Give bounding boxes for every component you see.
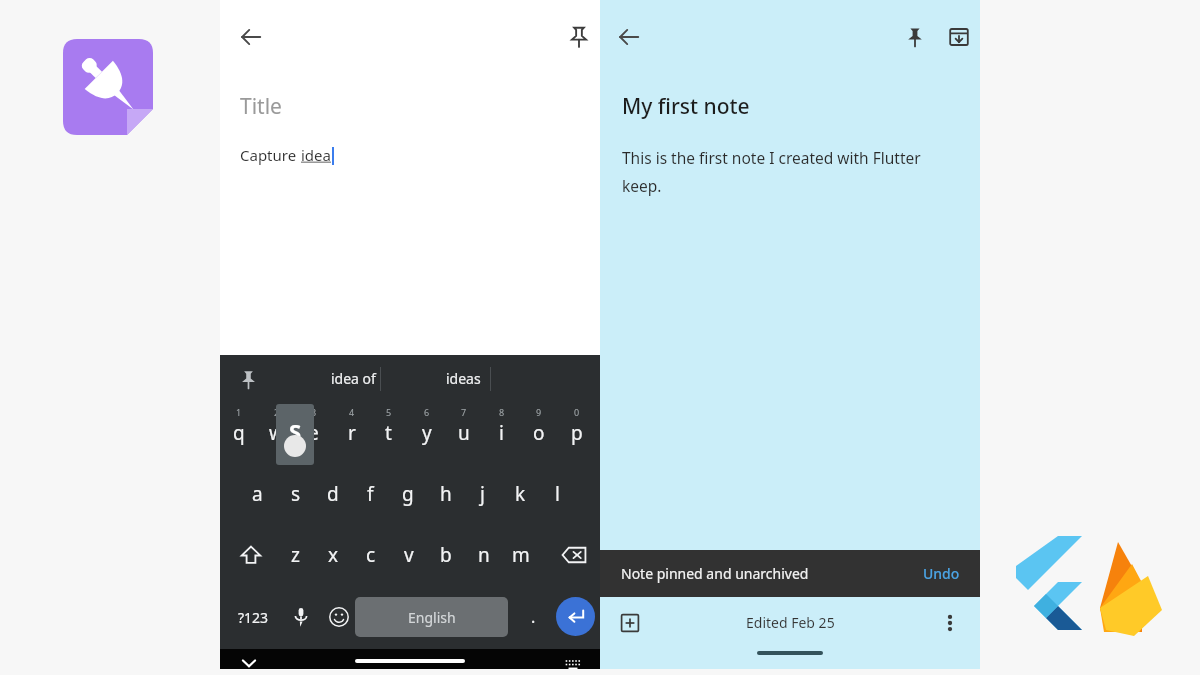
button[interactable]: d [314,463,351,524]
staticText: w [269,420,284,446]
staticText: q [233,420,245,446]
button[interactable]: 3 [295,402,332,463]
button[interactable]: x [315,524,352,585]
staticText: 9 [536,406,542,418]
staticText: ?123 [238,608,269,627]
staticText: . [531,606,536,628]
staticText: 7 [461,406,467,418]
staticText: x [328,542,339,568]
button[interactable]: Undo [923,564,960,583]
staticText: m [512,542,530,568]
staticText: Edited Feb 25 [746,613,835,632]
staticText: English [408,608,456,627]
staticText: 6 [424,406,430,418]
button[interactable]: Unpin note [896,18,934,56]
staticText: h [440,481,452,507]
staticText: i [499,420,504,446]
staticText: s [291,481,301,507]
button[interactable]: Voice input [282,585,320,649]
staticText: c [366,542,376,568]
button[interactable]: n [465,524,502,585]
staticText: 5 [386,406,392,418]
staticText: o [533,420,545,446]
button[interactable]: Pin note [560,18,598,56]
staticText: 1 [236,406,242,418]
button[interactable]: l [539,463,576,524]
button[interactable]: v [390,524,427,585]
button[interactable]: g [389,463,426,524]
staticText: My first note [622,92,750,121]
staticText: g [402,481,414,507]
button[interactable]: 8 [483,402,520,463]
button[interactable]: m [502,524,539,585]
staticText: 3 [311,406,317,418]
button[interactable]: Back [610,18,648,56]
button[interactable]: Enter [556,597,595,636]
button[interactable]: z [277,524,314,585]
button[interactable]: Switch keyboard [558,655,588,675]
staticText: k [515,481,526,507]
button[interactable]: k [502,463,539,524]
staticText: idea [301,145,331,165]
button[interactable]: 2 [258,402,295,463]
button[interactable]: Shift [228,524,273,585]
staticText: 2 [274,406,280,418]
button[interactable]: Add [612,605,648,641]
staticText: S [289,416,302,446]
button[interactable]: Emoji [320,585,358,649]
staticText: n [478,542,490,568]
button[interactable]: 9 [520,402,557,463]
button[interactable]: Hide keyboard [232,653,266,673]
staticText: v [404,542,414,568]
button[interactable]: f [352,463,389,524]
staticText: idea of [331,369,376,388]
button[interactable]: 5 [370,402,407,463]
staticText: l [555,481,560,507]
staticText: 4 [349,406,355,418]
staticText: z [291,542,300,568]
button[interactable]: English [355,597,508,637]
button[interactable]: b [427,524,464,585]
button[interactable]: . [515,585,551,649]
staticText: Note pinned and unarchived [621,564,809,583]
staticText: 0 [574,406,580,418]
button[interactable]: j [464,463,501,524]
button[interactable]: 1 [220,402,257,463]
button[interactable]: c [352,524,389,585]
staticText: b [440,542,452,568]
staticText: f [367,481,374,507]
button[interactable]: ?123 [228,585,278,649]
staticText: Undo [923,564,960,583]
staticText: keep. [622,175,662,196]
staticText: a [252,481,263,507]
button[interactable]: a [239,463,276,524]
button[interactable]: h [427,463,464,524]
button[interactable]: 0 [558,402,595,463]
button[interactable]: 7 [445,402,482,463]
staticText: Capture [240,145,301,165]
staticText: Title [240,92,282,121]
button[interactable]: Archive [940,18,978,56]
button[interactable]: s [277,463,314,524]
staticText: This is the first note I created with Fl… [622,147,921,168]
staticText: e [308,420,319,446]
staticText: 8 [499,406,505,418]
staticText: d [327,481,339,507]
staticText: u [458,420,470,446]
staticText: ideas [446,369,481,388]
button[interactable]: Back [232,18,270,56]
button[interactable]: Backspace [552,524,596,585]
button[interactable]: idea of [286,355,420,402]
staticText: p [571,420,583,446]
button[interactable]: More options [932,605,968,641]
button[interactable]: 4 [333,402,370,463]
button[interactable]: ideas [396,355,530,402]
staticText: r [348,420,356,446]
button[interactable]: 6 [408,402,445,463]
staticText: y [422,420,432,446]
staticText: j [480,481,485,507]
staticText: t [385,420,392,446]
button[interactable]: Clipboard [234,365,262,393]
